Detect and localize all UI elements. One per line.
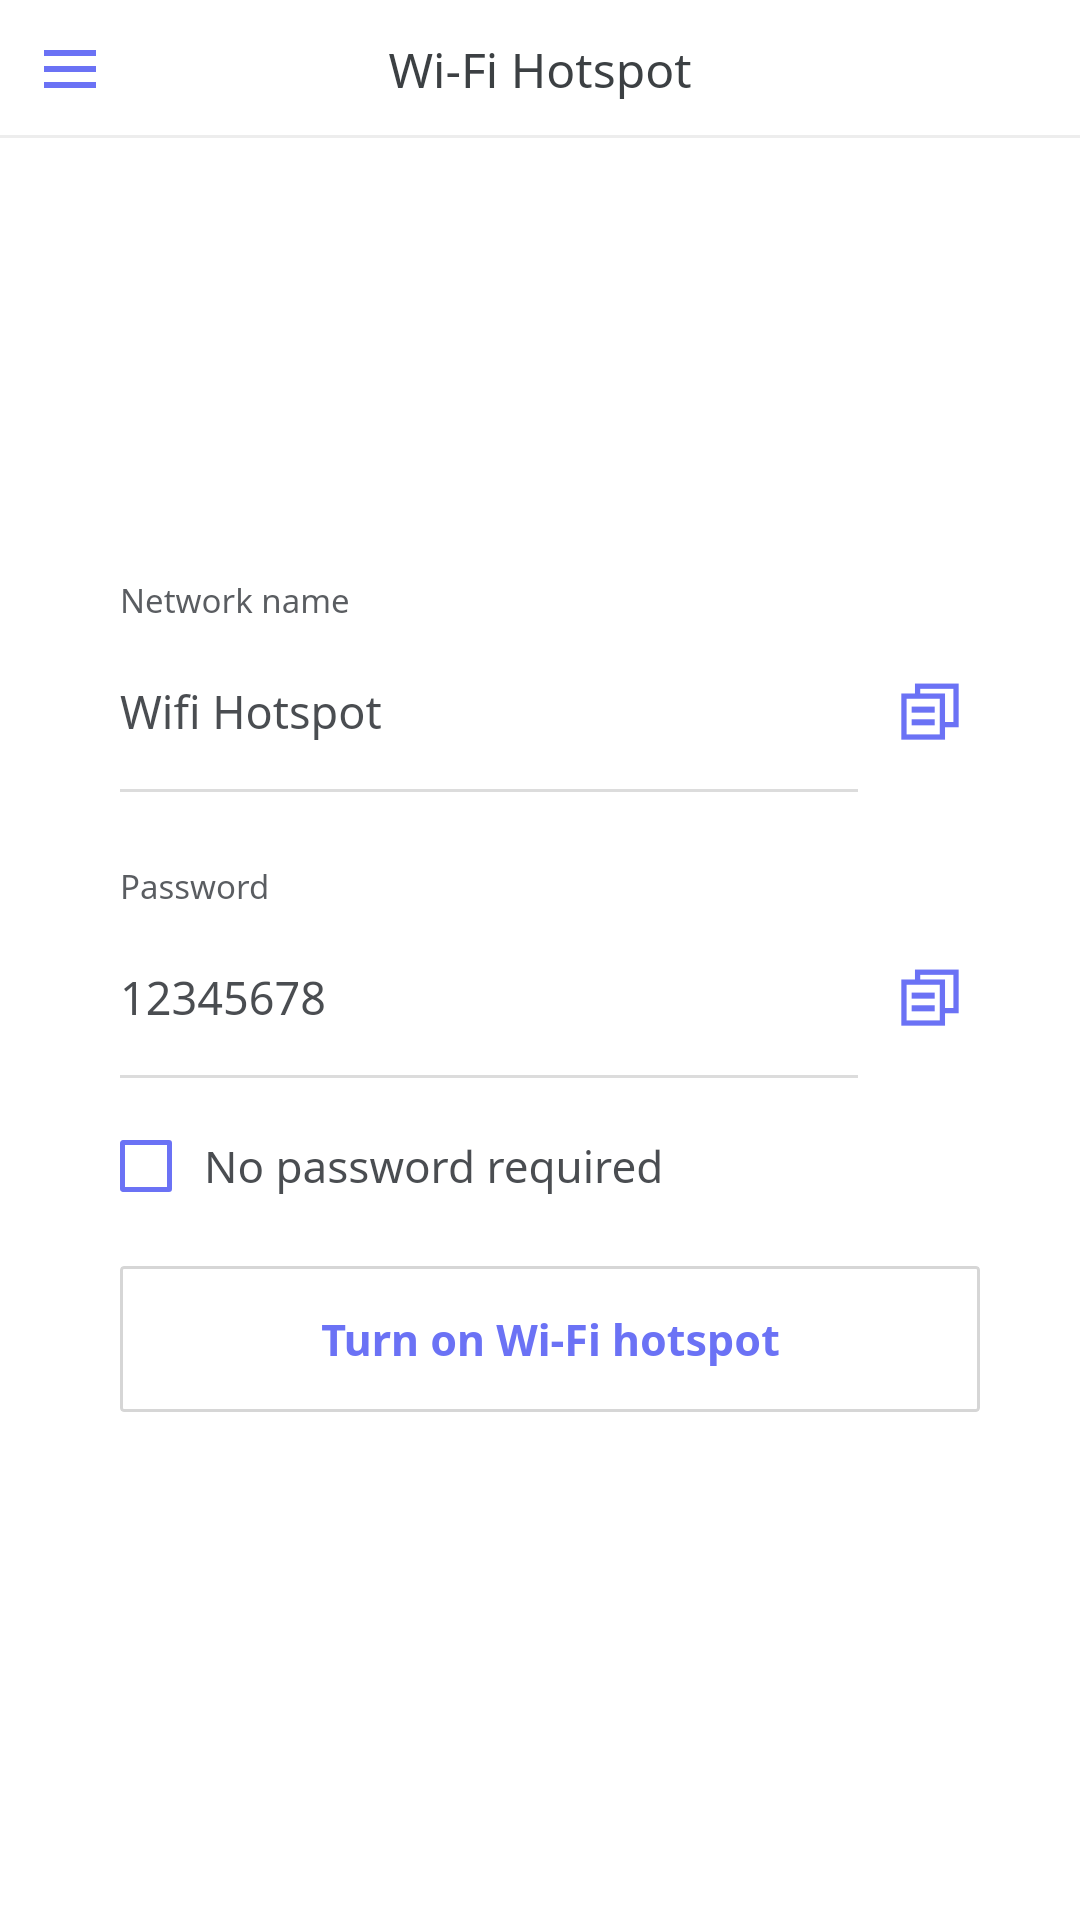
button[interactable]: Turn on Wi-Fi hotspot — [120, 1266, 980, 1412]
button[interactable]: No password required — [120, 1136, 980, 1196]
staticText: No password required — [204, 1136, 664, 1196]
staticText: Turn on Wi-Fi hotspot — [321, 1310, 780, 1369]
staticText: Password — [120, 864, 270, 909]
button[interactable]: Copy network name — [880, 661, 980, 761]
button[interactable]: Menu — [20, 19, 120, 119]
button[interactable]: Copy password — [880, 947, 980, 1047]
staticText: Network name — [120, 578, 350, 623]
staticText: 12345678 — [120, 967, 880, 1028]
staticText: Wifi Hotspot — [120, 681, 880, 742]
staticText: Wi-Fi Hotspot — [388, 37, 692, 102]
